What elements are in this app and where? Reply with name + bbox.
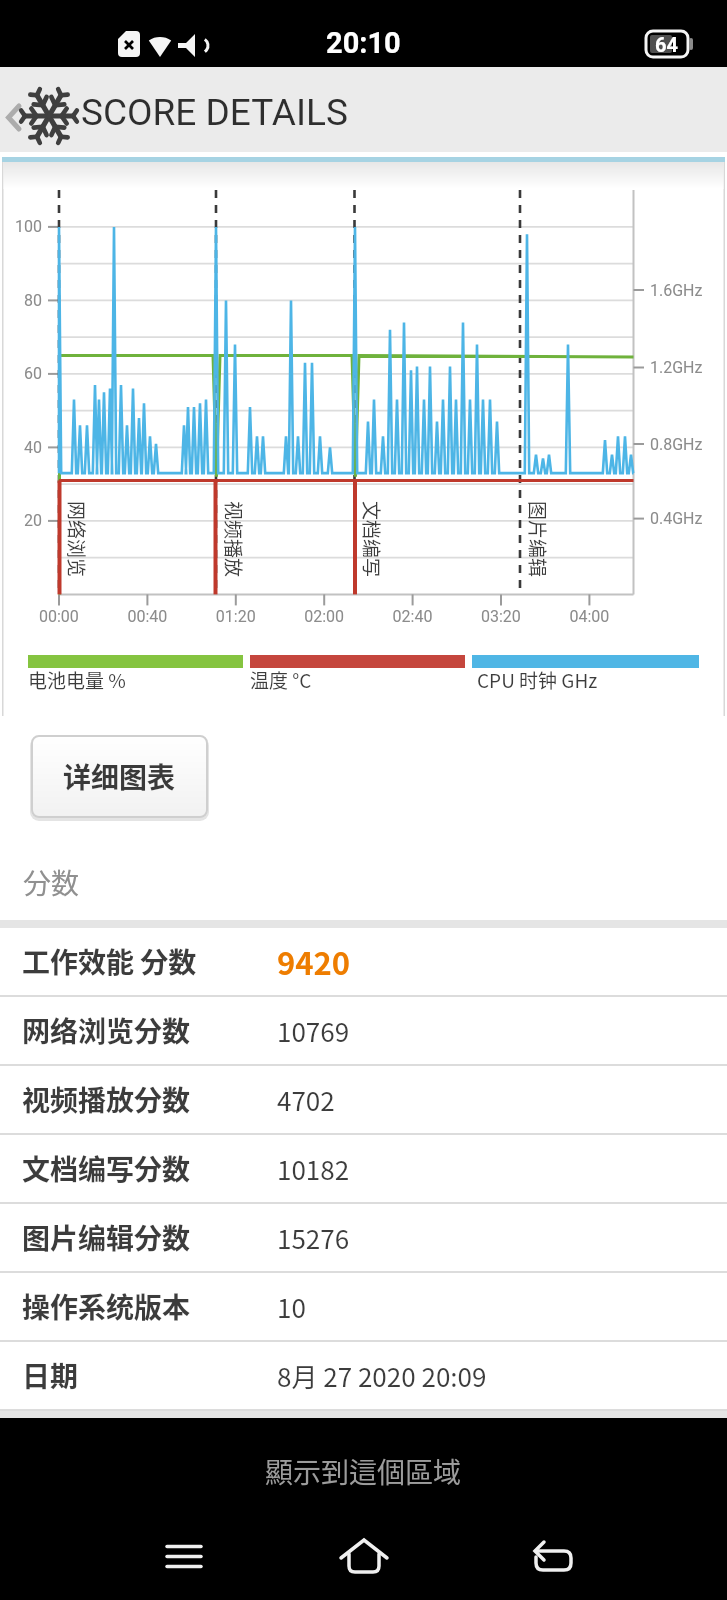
staticText: 8月 27 2020 20:09 [277,1357,487,1395]
button[interactable]: SCORE DETAILS [0,67,727,152]
staticText: 15276 [277,1219,350,1257]
staticText: 64 [655,33,678,56]
staticText: 10 [277,1288,306,1326]
staticText: SCORE DETAILS [81,91,348,134]
staticText: 详细图表 [63,756,176,797]
button[interactable]: 视频播放分数 [0,1066,727,1133]
staticText: 20:10 [326,26,401,60]
staticText: 分数 [23,862,80,903]
staticText: 操作系统版本 [22,1286,191,1327]
button[interactable]: 日期 [0,1342,727,1409]
button[interactable] [157,1529,212,1584]
staticText: 工作效能 分数 [22,941,197,982]
staticText: 4702 [277,1081,335,1119]
staticText: 日期 [22,1355,79,1396]
button[interactable]: 工作效能 分数 [0,928,727,995]
button[interactable] [527,1529,582,1584]
staticText: 文档编写分数 [22,1148,191,1189]
staticText: 顯示到這個區域 [265,1451,462,1492]
staticText: 9420 [277,939,351,984]
button[interactable]: 操作系统版本 [0,1273,727,1340]
button[interactable]: 文档编写分数 [0,1135,727,1202]
staticText: 视频播放分数 [22,1079,191,1120]
staticText: 10182 [277,1150,350,1188]
staticText: 图片编辑分数 [22,1217,191,1258]
button[interactable] [337,1529,392,1584]
button[interactable]: 网络浏览分数 [0,997,727,1064]
staticText: 10769 [277,1012,350,1050]
button[interactable]: 图片编辑分数 [0,1204,727,1271]
staticText: 网络浏览分数 [22,1010,191,1051]
button[interactable]: 详细图表 [31,735,208,818]
